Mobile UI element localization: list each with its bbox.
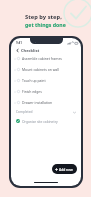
staticText: Organize site cabinetry: [22, 119, 58, 123]
button[interactable]: Completed: [11, 108, 81, 116]
staticText: Step by step,: [25, 13, 62, 21]
button[interactable]: Drawer installation: [11, 97, 81, 108]
staticText: Drawer installation: [22, 100, 53, 105]
button[interactable]: Mount cabinets on wall: [11, 64, 81, 75]
button[interactable]: Touch up paint: [11, 75, 81, 86]
staticText: Checklist: [21, 48, 40, 53]
staticText: Assemble cabinet frames: [22, 56, 62, 61]
staticText: Finish edges: [22, 89, 42, 94]
button[interactable]: Assemble cabinet frames: [11, 53, 81, 64]
staticText: get things done: [25, 21, 66, 28]
staticText: Completed: [16, 110, 33, 114]
staticText: Mount cabinets on wall: [22, 67, 59, 72]
button[interactable]: Add new: [52, 164, 77, 174]
staticText: Touch up paint: [22, 78, 46, 83]
button[interactable]: Back: [14, 47, 20, 53]
button[interactable]: Finish edges: [11, 86, 81, 97]
staticText: Add new: [59, 167, 73, 171]
button[interactable]: Organize site cabinetry: [11, 116, 81, 126]
staticText: 9:41: [16, 41, 22, 45]
